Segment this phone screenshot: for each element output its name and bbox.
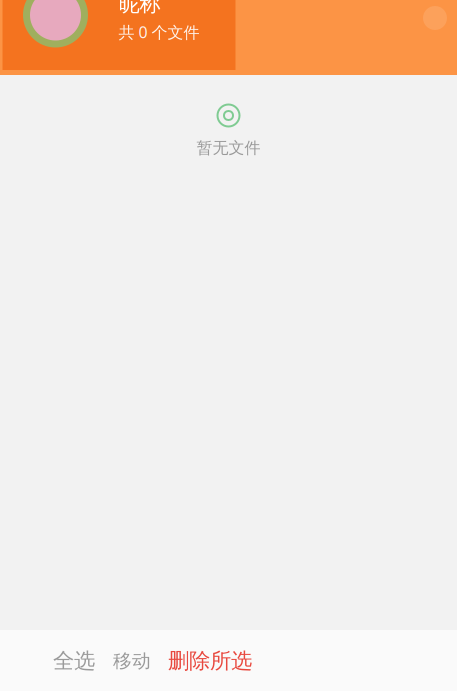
button[interactable]: 全选 [44,644,104,678]
staticText: 删除所选 [168,648,252,674]
staticText: 昵称 [118,0,160,17]
staticText: 暂无文件 [196,138,260,158]
button[interactable]: 删除所选 [160,644,260,678]
button[interactable]: 设置 [423,0,457,30]
staticText: 全选 [53,648,95,674]
button[interactable]: 移动 [104,644,160,678]
button[interactable]: 昵称 [4,0,237,70]
staticText: 移动 [113,649,151,672]
staticText: 共 0 个文件 [118,21,199,43]
